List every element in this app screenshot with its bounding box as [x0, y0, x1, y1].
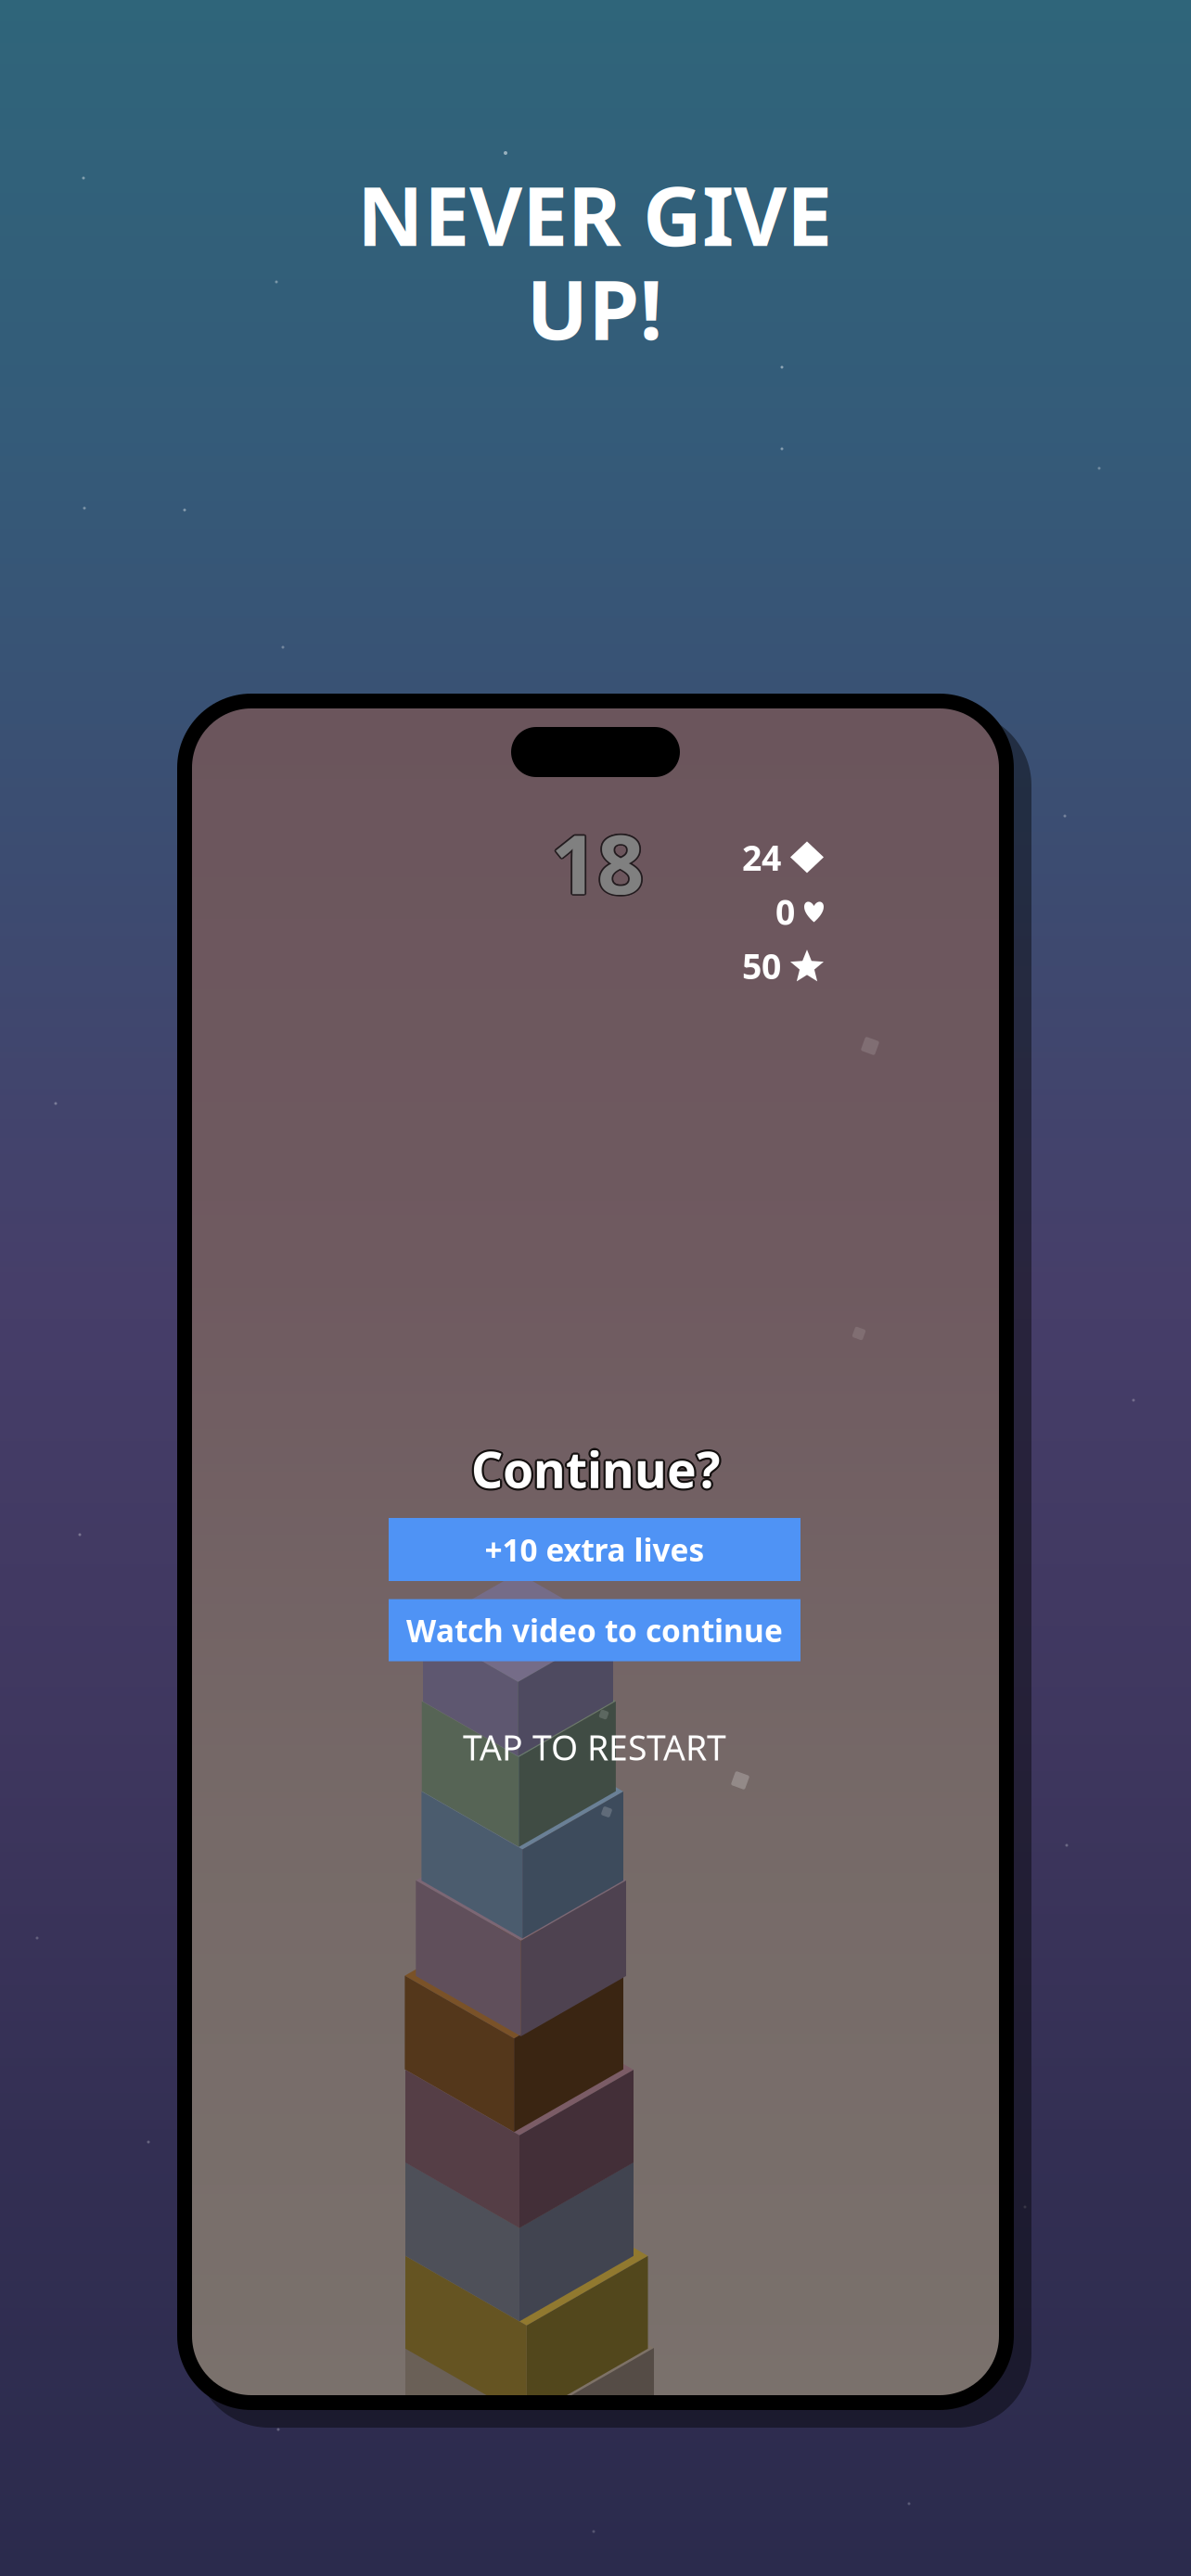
staticText: 18	[549, 808, 642, 917]
staticText: Continue?	[473, 1436, 722, 1502]
staticText: 24	[742, 834, 781, 880]
staticText: Watch video to continue	[406, 1610, 783, 1651]
staticText: Continue?	[470, 1437, 718, 1503]
staticText: UP!	[526, 254, 663, 362]
staticText: 50	[742, 943, 781, 989]
staticText: TAP TO RESTART	[463, 1724, 726, 1770]
staticText: 18	[552, 807, 645, 916]
staticText: 18	[553, 808, 645, 917]
staticText: Continue?	[471, 1434, 720, 1500]
staticText: +10 extra lives	[485, 1529, 704, 1570]
staticText: 18	[552, 809, 645, 918]
staticText: Continue?	[471, 1438, 720, 1504]
staticText: 18	[551, 807, 644, 915]
staticText: 18	[551, 808, 644, 917]
staticText: Continue?	[470, 1435, 718, 1500]
staticText: Continue?	[469, 1436, 718, 1502]
button[interactable]: +10 extra lives	[389, 1518, 800, 1581]
staticText: Continue?	[471, 1436, 720, 1502]
button[interactable]: TAP TO RESTART	[463, 1724, 726, 1770]
staticText: Continue?	[473, 1435, 721, 1500]
button[interactable]: Watch video to continue	[389, 1599, 800, 1661]
staticText: 18	[550, 809, 643, 918]
staticText: Continue?	[473, 1437, 721, 1503]
staticText: NEVER GIVE	[357, 160, 832, 268]
staticText: 0	[775, 889, 795, 935]
staticText: 18	[550, 807, 643, 916]
staticText: 18	[551, 810, 644, 918]
